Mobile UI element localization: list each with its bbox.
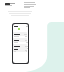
button[interactable] (13, 32, 27, 36)
button[interactable] (13, 38, 27, 42)
button[interactable] (13, 44, 27, 48)
button[interactable] (13, 48, 27, 52)
